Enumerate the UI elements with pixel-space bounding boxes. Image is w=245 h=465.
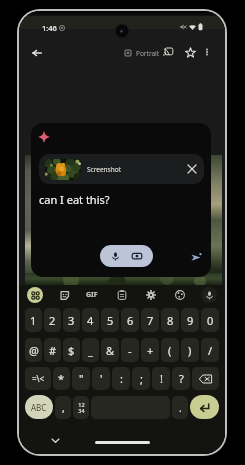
- staticText: can I eat this?: [39, 192, 110, 207]
- staticText: 4: [87, 313, 94, 328]
- staticText: 9: [187, 313, 194, 328]
- button[interactable]: Clipboard: [114, 287, 130, 303]
- button[interactable]: Hide keyboard: [48, 433, 62, 447]
- button[interactable]: Portrait: [121, 45, 164, 61]
- button[interactable]: 2: [44, 308, 61, 332]
- staticText: =\<: [32, 373, 45, 384]
- button[interactable]: 4: [82, 308, 99, 332]
- button[interactable]: 3: [63, 308, 80, 332]
- staticText: 8: [167, 313, 174, 328]
- button[interactable]: Favorite: [180, 42, 200, 62]
- button[interactable]: Settings: [143, 287, 159, 303]
- button[interactable]: (: [161, 338, 179, 362]
- button[interactable]: Cast: [158, 42, 178, 62]
- button[interactable]: 5: [101, 308, 119, 332]
- staticText: ;: [140, 371, 143, 386]
- button[interactable]: GIF: [82, 287, 102, 303]
- button[interactable]: 8: [161, 308, 179, 332]
- staticText: !: [160, 371, 163, 386]
- button[interactable]: Voice input: [201, 287, 217, 303]
- button[interactable]: Screenshot: [39, 154, 204, 184]
- staticText: 3: [68, 313, 75, 328]
- staticText: 7: [147, 313, 154, 328]
- button[interactable]: More options: [197, 42, 217, 62]
- button[interactable]: /: [201, 338, 219, 362]
- staticText: ': [100, 371, 103, 386]
- staticText: Screenshot: [87, 165, 122, 174]
- staticText: @: [29, 343, 39, 358]
- button[interactable]: Send: [188, 249, 204, 265]
- staticText: /: [208, 343, 213, 358]
- staticText: .: [179, 401, 182, 415]
- button[interactable]: *: [53, 367, 70, 390]
- button[interactable]: 9: [181, 308, 199, 332]
- staticText: &: [106, 343, 115, 358]
- button[interactable]: -: [121, 338, 139, 362]
- button[interactable]: ": [72, 367, 90, 390]
- staticText: _: [88, 343, 93, 358]
- button[interactable]: 0: [201, 308, 219, 332]
- button[interactable]: Remove screenshot: [184, 161, 200, 177]
- button[interactable]: [100, 245, 153, 267]
- staticText: 1:46: [42, 23, 57, 33]
- button[interactable]: @: [25, 338, 42, 362]
- button[interactable]: 7: [141, 308, 159, 332]
- button[interactable]: :: [112, 367, 130, 390]
- staticText: +: [147, 343, 154, 358]
- button[interactable]: $: [63, 338, 80, 362]
- staticText: GIF: [86, 290, 98, 300]
- button[interactable]: 12 34: [73, 396, 89, 419]
- button[interactable]: ': [92, 367, 110, 390]
- staticText: 0: [207, 313, 214, 328]
- button[interactable]: ;: [132, 367, 150, 390]
- button[interactable]: ABC: [25, 395, 53, 419]
- staticText: 12 34: [78, 401, 85, 414]
- button[interactable]: Stickers: [56, 287, 72, 303]
- staticText: ": [79, 371, 84, 386]
- button[interactable]: Enter: [190, 395, 219, 419]
- staticText: Portrait: [136, 49, 160, 58]
- button[interactable]: &: [101, 338, 119, 362]
- staticText: 5: [107, 313, 114, 328]
- button[interactable]: +: [141, 338, 159, 362]
- button[interactable]: #: [44, 338, 61, 362]
- button[interactable]: Backspace: [192, 367, 219, 390]
- button[interactable]: ,: [55, 396, 71, 419]
- button[interactable]: 1: [25, 308, 42, 332]
- staticText: *: [58, 371, 65, 386]
- staticText: (: [168, 343, 172, 358]
- button[interactable]: =\<: [25, 367, 51, 390]
- staticText: ABC: [31, 402, 47, 413]
- staticText: ?: [179, 371, 184, 386]
- button[interactable]: ?: [172, 367, 190, 390]
- staticText: :: [120, 371, 123, 386]
- staticText: #: [49, 343, 57, 358]
- button[interactable]: ): [181, 338, 199, 362]
- button[interactable]: .: [172, 396, 188, 419]
- staticText: $: [68, 343, 75, 358]
- button[interactable]: _: [82, 338, 99, 362]
- button[interactable]: !: [152, 367, 170, 390]
- staticText: 1: [30, 313, 37, 328]
- button[interactable]: Theme: [172, 287, 188, 303]
- staticText: ,: [62, 401, 65, 415]
- button[interactable]: Back: [26, 42, 48, 64]
- staticText: ): [188, 343, 192, 358]
- button[interactable]: Keyboard menu: [27, 287, 43, 303]
- staticText: -: [128, 343, 132, 358]
- staticText: 6: [127, 313, 134, 328]
- staticText: 2: [49, 313, 56, 328]
- button[interactable]: 6: [121, 308, 139, 332]
